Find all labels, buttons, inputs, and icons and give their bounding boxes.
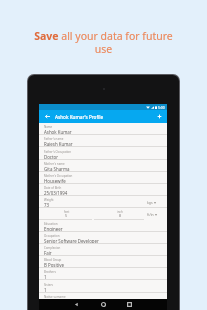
staticText: 1 [44, 287, 47, 293]
staticText: 25/03/1994 [44, 190, 68, 196]
button[interactable]: Father's name [39, 135, 167, 147]
button[interactable]: Back [72, 300, 81, 309]
staticText: 8 [119, 213, 122, 218]
staticText: Brothers [44, 270, 56, 274]
staticText: kgs [147, 200, 153, 205]
button[interactable]: Father's Occupation [39, 148, 167, 160]
button[interactable]: Recent apps [125, 300, 134, 309]
staticText: Rajesh Kumar [44, 141, 73, 147]
button[interactable]: Name [39, 123, 167, 135]
staticText: ft/in [147, 212, 154, 217]
staticText: Sisters [44, 283, 53, 287]
button[interactable]: Mother's name [39, 160, 167, 172]
button[interactable]: Native surname [39, 293, 167, 305]
staticText: 5 [65, 213, 68, 218]
staticText: Date of Birth [44, 186, 62, 190]
staticText: Ashok Kumar [44, 129, 72, 135]
staticText: 73 [44, 202, 50, 208]
button[interactable]: Weight [39, 196, 167, 208]
button[interactable]: Complexion [39, 244, 167, 256]
button[interactable]: Brothers [39, 268, 167, 280]
button[interactable]: Blood Group [39, 256, 167, 268]
button[interactable]: Home [99, 300, 108, 309]
staticText: Gita Sharma [44, 166, 70, 172]
staticText: Native surname [44, 295, 66, 299]
button[interactable]: Occupation [39, 232, 167, 244]
staticText: B Positive [44, 262, 64, 268]
button[interactable]: inch [94, 209, 146, 220]
staticText: Doctor [44, 154, 59, 160]
staticText: feet [64, 210, 70, 214]
button[interactable]: kgs [147, 200, 156, 205]
button[interactable]: Back [43, 112, 52, 121]
staticText: Education [44, 222, 58, 226]
staticText: Name [44, 125, 53, 129]
button[interactable]: feet [39, 209, 94, 220]
staticText: Engineer [44, 226, 63, 232]
staticText: inch [117, 210, 123, 214]
staticText: 1 [44, 274, 47, 280]
staticText: Mother's Occupation [44, 174, 73, 178]
button[interactable]: ft/in [147, 212, 157, 217]
staticText: Father's Occupation [44, 150, 72, 154]
button[interactable]: Education [39, 220, 167, 232]
staticText: Father's name [44, 137, 64, 141]
staticText: Senior Software Developer [44, 238, 99, 244]
button[interactable]: Sisters [39, 281, 167, 293]
staticText: Mother's name [44, 162, 65, 166]
staticText: Occupation [44, 234, 60, 238]
staticText: Blood Group [44, 258, 62, 262]
staticText: Housewife [44, 178, 66, 184]
staticText: Save all your data for future use [26, 29, 181, 56]
staticText: 5:00 [158, 105, 165, 110]
staticText: Weight [44, 198, 54, 202]
button[interactable]: Edit profile [155, 112, 164, 121]
staticText: Fair [44, 250, 52, 256]
staticText: Ashok Kumar's Profile [55, 114, 104, 120]
button[interactable]: Date of Birth [39, 184, 167, 196]
button[interactable]: Mother's Occupation [39, 172, 167, 184]
staticText: Complexion [44, 246, 61, 250]
